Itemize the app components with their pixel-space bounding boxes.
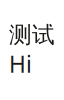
staticText: 测试 Hi — [9, 21, 55, 79]
